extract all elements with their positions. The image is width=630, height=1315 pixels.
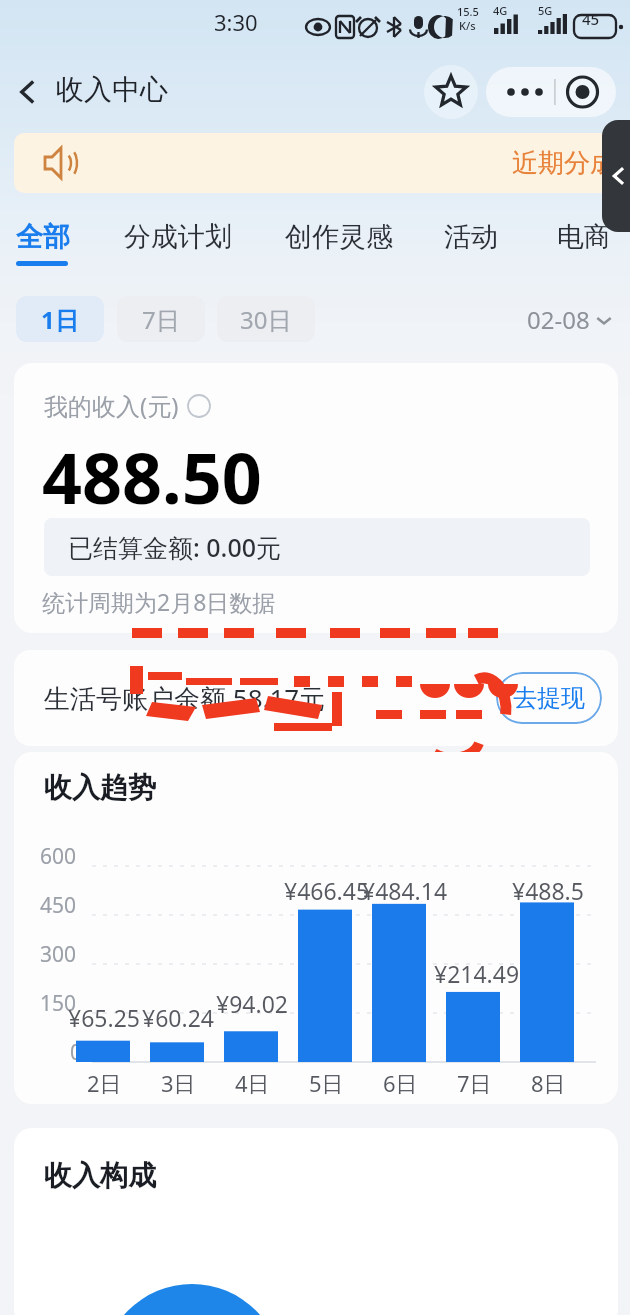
button[interactable]: 活动	[434, 210, 508, 274]
staticText: 3:30	[214, 7, 258, 37]
staticText: K/s	[459, 18, 476, 33]
button[interactable]: 收入构成	[14, 1128, 618, 1315]
staticText: 4G	[493, 3, 508, 18]
button[interactable]: 去提现	[496, 672, 602, 724]
staticText: 02-08	[527, 303, 590, 336]
staticText: 电商	[557, 220, 611, 254]
staticText: 统计周期为2月8日数据	[42, 586, 276, 617]
staticText: ¥65.25	[68, 1002, 140, 1033]
staticText: 488.50	[42, 429, 262, 524]
button[interactable]: 电商	[547, 210, 621, 274]
staticText: 4日	[235, 1068, 270, 1098]
staticText: 2日	[87, 1068, 122, 1098]
staticText: 1日	[41, 303, 79, 336]
button[interactable]: 7日	[117, 296, 205, 342]
staticText: 3日	[161, 1068, 196, 1098]
staticText: 7日	[142, 303, 180, 336]
staticText: 600	[40, 842, 77, 871]
staticText: 收入构成	[44, 1158, 156, 1193]
staticText: 创作灵感	[285, 220, 393, 254]
staticText: 已结算金额: 0.00元	[68, 530, 282, 564]
staticText: 生活号账户余额 58.17元	[44, 680, 326, 716]
staticText: ¥488.5	[512, 875, 584, 906]
staticText: 我的收入(元)	[44, 389, 179, 422]
button[interactable]: 02-08	[527, 303, 618, 336]
staticText: 7日	[457, 1068, 492, 1098]
button[interactable]: Back	[2, 66, 54, 118]
staticText: 活动	[444, 220, 498, 254]
staticText: 5G	[538, 3, 553, 18]
button[interactable]: 生活号账户余额 58.17元	[14, 650, 618, 746]
button[interactable]: 收入趋势	[14, 752, 618, 1104]
staticText: ¥214.49	[434, 958, 520, 989]
staticText: 收入趋势	[44, 770, 156, 805]
button[interactable]: Record	[554, 67, 616, 117]
button[interactable]: 30日	[217, 296, 315, 342]
staticText: 分成计划	[124, 220, 232, 254]
staticText: 450	[40, 891, 77, 920]
staticText: 150	[40, 989, 77, 1018]
staticText: 15.5	[457, 4, 479, 19]
staticText: 去提现	[513, 683, 585, 713]
button[interactable]: 创作灵感	[275, 210, 403, 274]
staticText: 收入中心	[56, 72, 168, 107]
staticText: ¥94.02	[216, 988, 288, 1019]
button[interactable]: 近期分成	[14, 133, 618, 193]
staticText: 6日	[383, 1068, 418, 1098]
staticText: 8日	[531, 1068, 566, 1098]
button[interactable]: More options	[486, 67, 551, 117]
staticText: 0	[70, 1038, 83, 1067]
staticText: 近期分成	[512, 147, 616, 180]
staticText: ¥60.24	[142, 1002, 214, 1033]
button[interactable]: 1日	[16, 296, 104, 342]
staticText: 45	[582, 9, 600, 29]
button[interactable]: 分成计划	[114, 210, 242, 274]
staticText: 5日	[309, 1068, 344, 1098]
staticText: 30日	[240, 303, 292, 336]
button[interactable]: Expand panel	[602, 120, 630, 232]
staticText: ¥484.14	[362, 875, 448, 906]
button[interactable]: Favorite	[424, 65, 478, 119]
staticText: ¥466.45	[284, 875, 370, 906]
staticText: 300	[40, 940, 77, 969]
button[interactable]: 我的收入(元)	[14, 363, 618, 633]
staticText: 全部	[16, 220, 70, 254]
button[interactable]: 全部	[6, 210, 80, 274]
